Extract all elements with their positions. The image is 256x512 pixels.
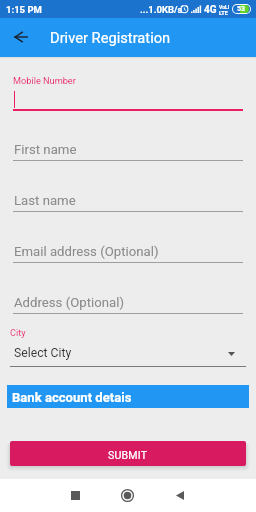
staticText: Select City (14, 346, 72, 360)
staticText: 1:15 PM (6, 4, 42, 15)
staticText: Bank account detais (12, 390, 132, 405)
staticText: 53 (237, 5, 246, 13)
button[interactable]: Back (166, 481, 194, 509)
staticText: LTE (219, 10, 228, 16)
staticText: Mobile Number (13, 75, 76, 86)
button[interactable]: Bank account detais (7, 385, 249, 408)
button[interactable]: Recent apps (61, 481, 89, 509)
staticText: VoLI (219, 4, 230, 10)
staticText: 4G (204, 4, 217, 16)
button[interactable]: Select City (13, 340, 243, 366)
staticText: City (10, 327, 26, 338)
staticText: Driver Registration (50, 29, 171, 46)
button[interactable]: SUBMIT (10, 441, 246, 466)
staticText: Email address (Optional) (14, 244, 159, 259)
staticText: SUBMIT (108, 449, 148, 461)
staticText: Last name (14, 193, 76, 208)
staticText: ...1.0KB/s (140, 4, 183, 15)
button[interactable]: Back (8, 26, 34, 52)
staticText: Address (Optional) (14, 295, 124, 310)
staticText: First name (14, 142, 77, 157)
button[interactable]: Home (113, 481, 141, 509)
